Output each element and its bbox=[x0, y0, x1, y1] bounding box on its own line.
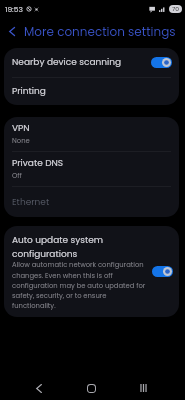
staticText: Off bbox=[12, 171, 22, 181]
staticText: Private DNS bbox=[12, 157, 64, 170]
staticText: Ethernet bbox=[12, 196, 50, 209]
button[interactable]: Ethernet bbox=[4, 187, 179, 217]
button[interactable]: Printing bbox=[4, 78, 179, 105]
button[interactable]: Recent apps bbox=[128, 373, 158, 400]
button[interactable]: Private DNS bbox=[4, 152, 179, 186]
staticText: Printing bbox=[12, 85, 46, 98]
button[interactable]: Navigate up bbox=[0, 18, 24, 44]
staticText: Allow automatic network configuration ch… bbox=[12, 260, 146, 310]
staticText: 70 bbox=[172, 5, 180, 13]
button[interactable]: Home bbox=[76, 373, 106, 400]
staticText: Nearby device scanning bbox=[12, 56, 122, 69]
staticText: More connection settings bbox=[24, 23, 176, 40]
staticText: None bbox=[12, 136, 30, 146]
button[interactable]: Nearby device scanning bbox=[4, 48, 179, 77]
button[interactable]: Toggle on bbox=[152, 266, 173, 277]
button[interactable]: VPN bbox=[4, 117, 179, 151]
button[interactable]: Toggle on bbox=[151, 57, 172, 68]
button[interactable]: Back bbox=[24, 373, 54, 400]
staticText: 19:53 bbox=[5, 4, 23, 14]
staticText: VPN bbox=[12, 122, 30, 135]
staticText: Auto update system configurations bbox=[12, 234, 117, 260]
button[interactable]: Auto update system configurations bbox=[4, 226, 179, 317]
